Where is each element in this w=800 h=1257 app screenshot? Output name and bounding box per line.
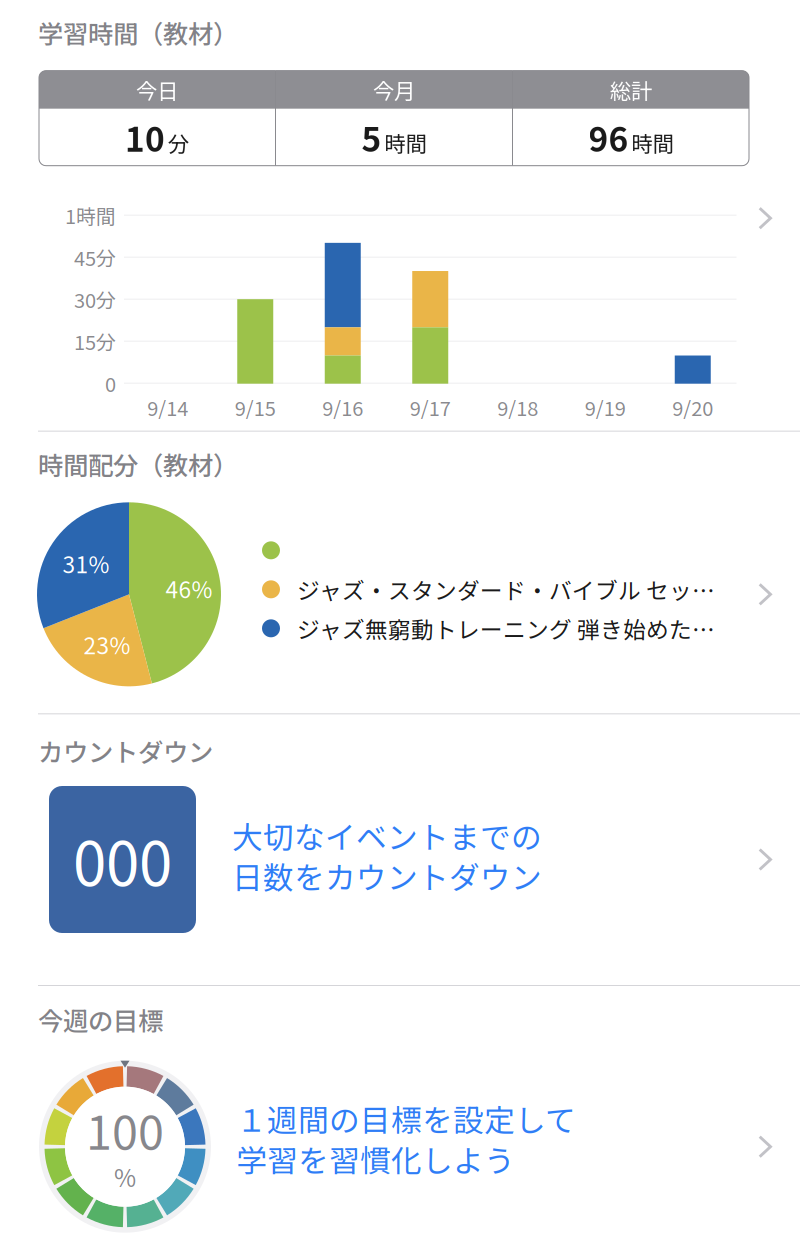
button[interactable]: 今日	[0, 71, 749, 166]
staticText: 000	[73, 816, 172, 903]
staticText: 学習を習慣化しよう	[236, 1137, 515, 1181]
staticText: １週間の目標を設定して	[236, 1096, 576, 1141]
staticText: 5	[361, 113, 381, 161]
staticText: 時間配分（教材）	[38, 446, 238, 482]
staticText: 15分	[74, 327, 116, 356]
staticText: 9/17	[410, 393, 451, 422]
staticText: 100	[86, 1095, 164, 1163]
staticText: 時間	[631, 127, 673, 158]
staticText: 46%	[165, 572, 212, 605]
button[interactable]: 000	[0, 786, 800, 933]
staticText: 今日	[136, 74, 178, 105]
staticText: 23%	[83, 628, 130, 661]
staticText: 9/20	[672, 393, 713, 422]
staticText: 大切なイベントまでの	[232, 813, 542, 857]
staticText: 今週の目標	[38, 1001, 163, 1038]
staticText: 10	[125, 113, 165, 161]
staticText: 9/15	[235, 393, 276, 422]
button[interactable]: 46%	[0, 502, 800, 686]
staticText: ジャズ・スタンダード・バイブル セッシ…	[297, 573, 733, 606]
staticText: 日数をカウントダウン	[232, 853, 542, 898]
staticText: 96	[588, 113, 628, 161]
staticText: 時間	[384, 127, 426, 158]
staticText: カウントダウン	[38, 732, 213, 769]
staticText: 1時間	[65, 201, 116, 230]
staticText: 学習時間（教材）	[38, 14, 238, 51]
staticText: 総計	[610, 74, 652, 105]
staticText: 9/18	[497, 393, 538, 422]
staticText: 0	[105, 369, 116, 398]
staticText: 30分	[74, 285, 116, 314]
staticText: ジャズ無窮動トレーニング 弾き始めたら…	[297, 612, 733, 645]
staticText: %	[114, 1159, 136, 1194]
button[interactable]: 100	[0, 1061, 800, 1233]
staticText: 分	[168, 127, 189, 158]
staticText: 今月	[373, 74, 415, 105]
button[interactable]: 1時間	[0, 215, 800, 422]
staticText: 9/16	[322, 393, 363, 422]
staticText: 9/19	[585, 393, 626, 422]
staticText: 31%	[62, 547, 109, 580]
staticText: 9/14	[147, 393, 188, 422]
staticText: 45分	[74, 243, 116, 272]
